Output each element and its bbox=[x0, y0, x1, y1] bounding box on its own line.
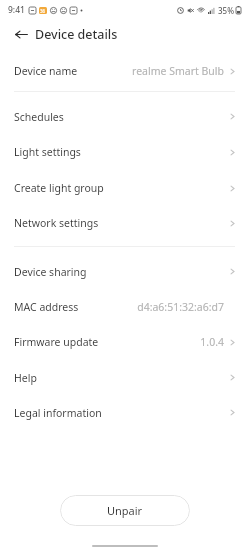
staticText: Network settings bbox=[14, 216, 99, 230]
staticText: 1.0.4 bbox=[200, 335, 224, 349]
staticText: d4:a6:51:32:a6:d7 bbox=[137, 300, 224, 314]
staticText: Schedules bbox=[14, 110, 64, 124]
button[interactable]: Help bbox=[0, 360, 249, 395]
button[interactable]: Unpair bbox=[60, 495, 190, 526]
staticText: Device name bbox=[14, 64, 78, 78]
staticText: Device sharing bbox=[14, 265, 87, 279]
button[interactable]: Schedules bbox=[0, 99, 249, 134]
staticText: 36 bbox=[40, 8, 46, 14]
staticText: Firmware update bbox=[14, 335, 99, 349]
button[interactable]: Create light group bbox=[0, 170, 249, 206]
button[interactable]: Legal information bbox=[0, 395, 249, 430]
button[interactable]: Light settings bbox=[0, 134, 249, 170]
staticText: Help bbox=[14, 371, 37, 385]
button[interactable]: Device name bbox=[0, 56, 249, 86]
staticText: Unpair bbox=[107, 503, 143, 518]
staticText: Device details bbox=[35, 26, 118, 43]
button[interactable]: Firmware update bbox=[0, 324, 249, 360]
button[interactable]: MAC address bbox=[0, 289, 249, 324]
staticText: 35% bbox=[218, 5, 234, 16]
staticText: Create light group bbox=[14, 181, 104, 195]
staticText: realme Smart Bulb bbox=[132, 64, 224, 78]
staticText: Legal information bbox=[14, 406, 102, 420]
button[interactable]: Back bbox=[12, 25, 30, 43]
staticText: 9:41 bbox=[8, 4, 25, 16]
staticText: Light settings bbox=[14, 145, 81, 159]
button[interactable]: Network settings bbox=[0, 206, 249, 240]
button[interactable]: Device sharing bbox=[0, 254, 249, 289]
staticText: MAC address bbox=[14, 300, 79, 314]
